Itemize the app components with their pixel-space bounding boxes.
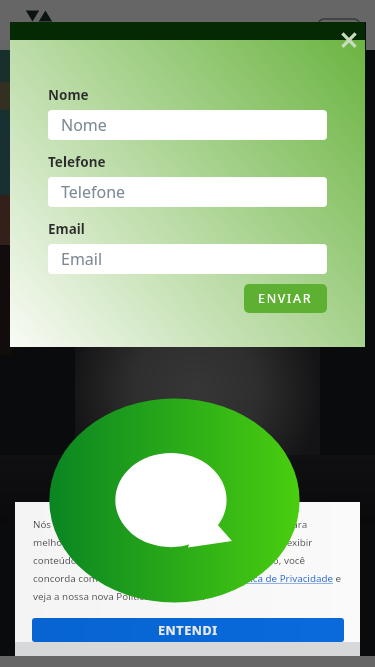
button[interactable]: Nome — [48, 110, 327, 140]
button[interactable]: Fechar — [335, 26, 363, 54]
button[interactable]: ENVIAR — [244, 284, 327, 313]
staticText: ENTENDI — [158, 622, 218, 639]
staticText: Nome — [61, 114, 107, 136]
staticText: Telefone — [48, 153, 106, 171]
staticText: ENVIAR — [258, 290, 313, 307]
staticText: Email — [61, 248, 103, 270]
staticText: Nós usamos cookies e outras tecnologias … — [33, 518, 342, 603]
button[interactable]: Telefone — [48, 177, 327, 207]
button[interactable]: Nós usamos cookies e outras tecnologias … — [33, 518, 342, 603]
staticText: Nome — [48, 86, 89, 104]
staticText: Telefone — [61, 181, 126, 203]
button[interactable]: Email — [48, 244, 327, 274]
staticText: Email — [48, 220, 85, 238]
button[interactable]: ENTENDI — [32, 618, 344, 642]
